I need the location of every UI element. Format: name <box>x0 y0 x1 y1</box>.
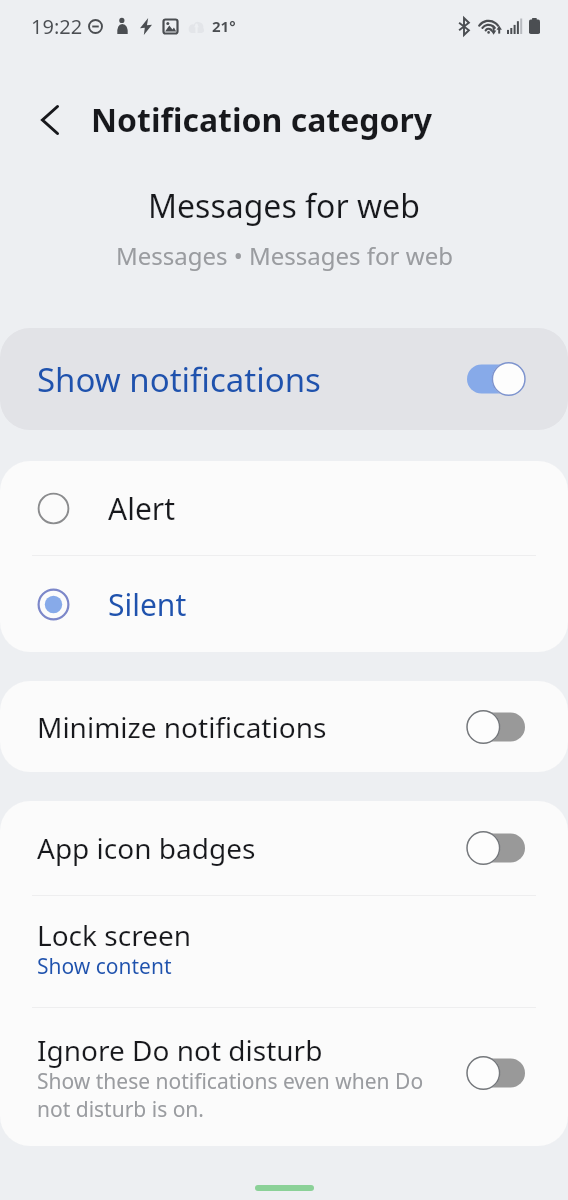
button[interactable]: Alert <box>0 461 568 555</box>
staticText: Minimize notifications <box>37 708 327 746</box>
button[interactable]: Turn on <box>467 709 525 745</box>
button[interactable]: Minimize notifications <box>0 681 568 772</box>
staticText: Messages • Messages for web <box>116 239 453 272</box>
staticText: Messages for web <box>148 184 420 228</box>
button[interactable]: Turn on <box>467 830 525 866</box>
staticText: Alert <box>108 488 176 529</box>
button[interactable]: Show notifications <box>0 328 568 430</box>
button[interactable]: Navigate up <box>22 92 78 148</box>
staticText: Show these notifications even when Do no… <box>37 1067 424 1123</box>
staticText: Lock screen <box>37 916 192 954</box>
staticText: 21° <box>212 16 236 36</box>
staticText: Silent <box>108 584 187 625</box>
button[interactable]: Ignore Do not disturb <box>0 1008 568 1146</box>
staticText: Show content <box>37 952 172 981</box>
button[interactable]: App icon badges <box>0 801 568 895</box>
staticText: Ignore Do not disturb <box>37 1031 323 1069</box>
button[interactable]: Turn off <box>467 361 525 397</box>
button[interactable]: Turn on <box>467 1055 525 1091</box>
button[interactable]: Lock screen <box>0 896 568 1007</box>
staticText: App icon badges <box>37 829 256 867</box>
staticText: 19:22 <box>31 13 83 40</box>
button[interactable]: Silent <box>0 556 568 652</box>
staticText: Notification category <box>91 98 433 142</box>
staticText: Show notifications <box>37 357 321 402</box>
